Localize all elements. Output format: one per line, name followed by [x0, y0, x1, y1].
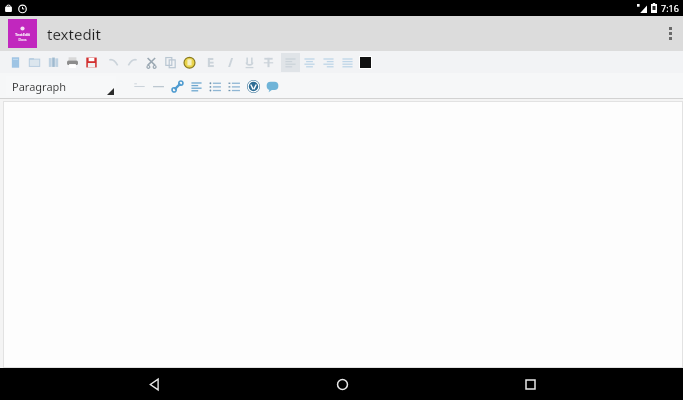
button[interactable]: WordPress: [244, 76, 263, 96]
button[interactable]: Bold: [202, 52, 221, 72]
staticText: TextEdit: [15, 32, 30, 37]
button[interactable]: Numbered list: [225, 76, 244, 96]
staticText: textedit: [47, 24, 101, 44]
button[interactable]: Horizontal rule: [130, 76, 149, 96]
button[interactable]: Underline: [240, 52, 259, 72]
button[interactable]: More options: [657, 16, 683, 51]
button[interactable]: Bulleted list: [206, 76, 225, 96]
staticText: Paragraph: [12, 79, 67, 94]
button[interactable]: TextEdit: [8, 19, 37, 48]
button[interactable]: Comment: [263, 76, 282, 96]
button[interactable]: Save: [82, 52, 101, 72]
button[interactable]: Open: [25, 52, 44, 72]
button[interactable]: Insert line: [149, 76, 168, 96]
button[interactable]: Strikethrough: [259, 52, 278, 72]
button[interactable]: New document: [6, 52, 25, 72]
button[interactable]: Cut: [142, 52, 161, 72]
button[interactable]: Insert link: [168, 76, 187, 96]
button[interactable]: Italic: [221, 52, 240, 72]
button[interactable]: Justify: [338, 52, 357, 72]
button[interactable]: Home: [320, 368, 364, 400]
button[interactable]: Align left: [281, 53, 300, 72]
button[interactable]: Paragraph: [6, 76, 116, 96]
button[interactable]: Align right: [319, 52, 338, 72]
button[interactable]: Blockquote: [187, 76, 206, 96]
button[interactable]: Recent apps: [508, 368, 552, 400]
button[interactable]: Open recent: [44, 52, 63, 72]
button[interactable]: Copy: [161, 52, 180, 72]
button[interactable]: Undo: [104, 52, 123, 72]
staticText: Docs: [18, 37, 27, 42]
staticText: 7:16: [661, 2, 679, 14]
button[interactable]: Back: [132, 368, 176, 400]
button[interactable]: Paste: [180, 52, 199, 72]
button[interactable]: Print: [63, 52, 82, 72]
button[interactable]: Redo: [123, 52, 142, 72]
button[interactable]: Align center: [300, 52, 319, 72]
